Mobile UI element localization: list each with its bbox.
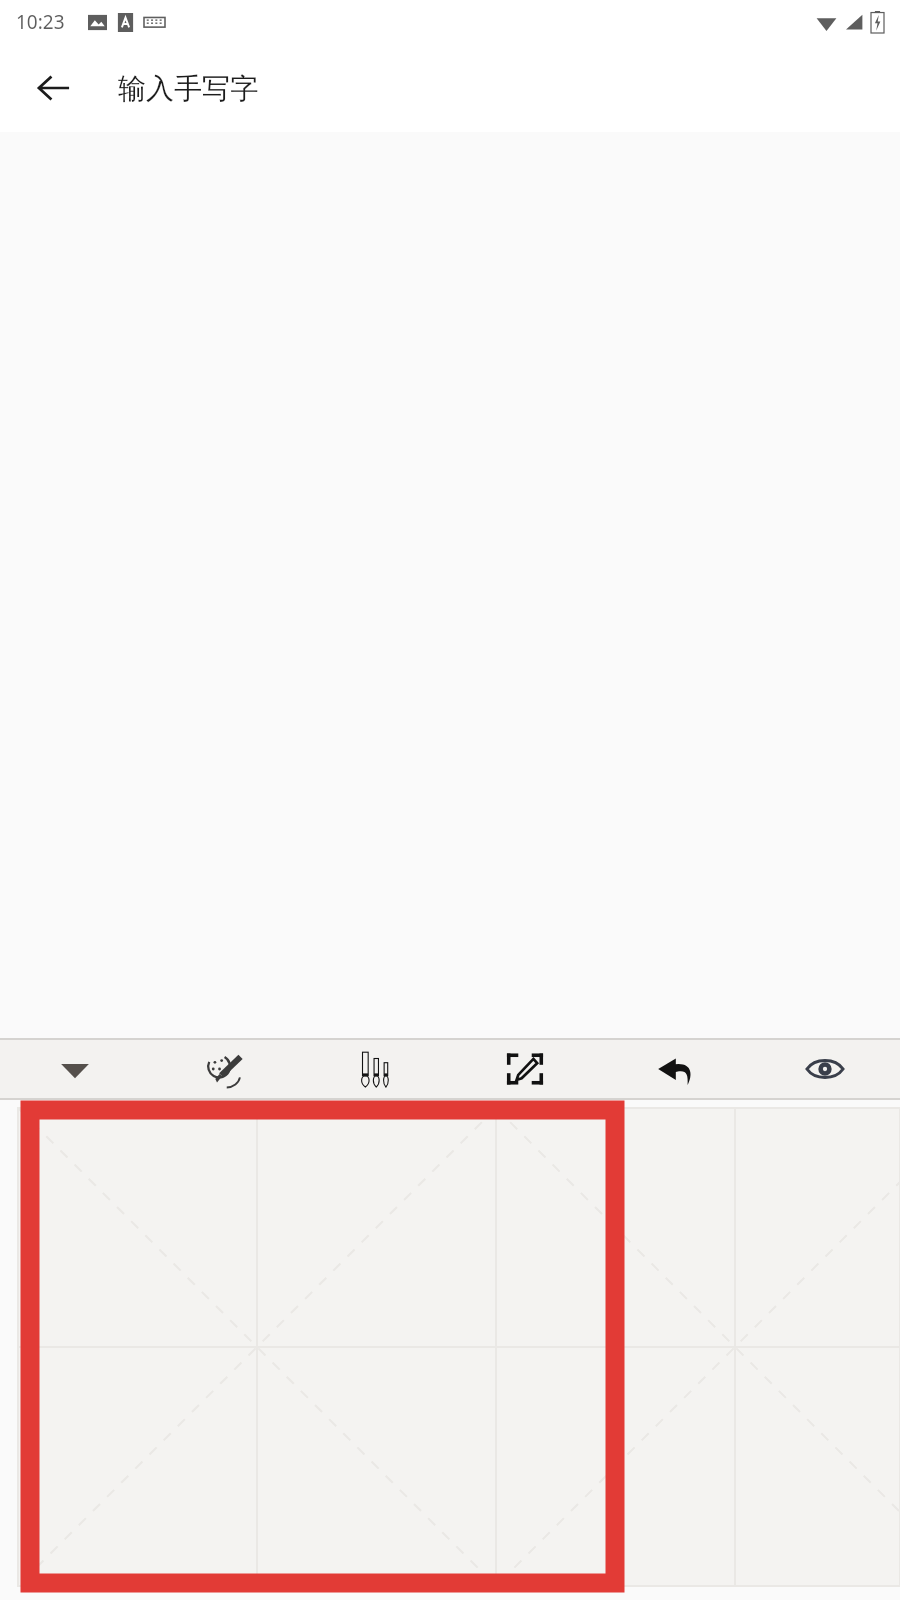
button[interactable]: Brush size bbox=[300, 1040, 450, 1098]
staticText: 输入手写字 bbox=[118, 71, 258, 106]
button[interactable]: Selected character cell bbox=[0, 1100, 900, 1600]
button[interactable]: Collapse bbox=[0, 1040, 150, 1098]
button[interactable]: Back bbox=[20, 55, 86, 121]
button[interactable]: Edit area bbox=[450, 1040, 600, 1098]
button[interactable]: Palette bbox=[150, 1040, 300, 1098]
button[interactable]: Undo bbox=[600, 1040, 750, 1098]
staticText: 10:23 bbox=[16, 9, 65, 35]
button[interactable]: Preview bbox=[750, 1040, 900, 1098]
